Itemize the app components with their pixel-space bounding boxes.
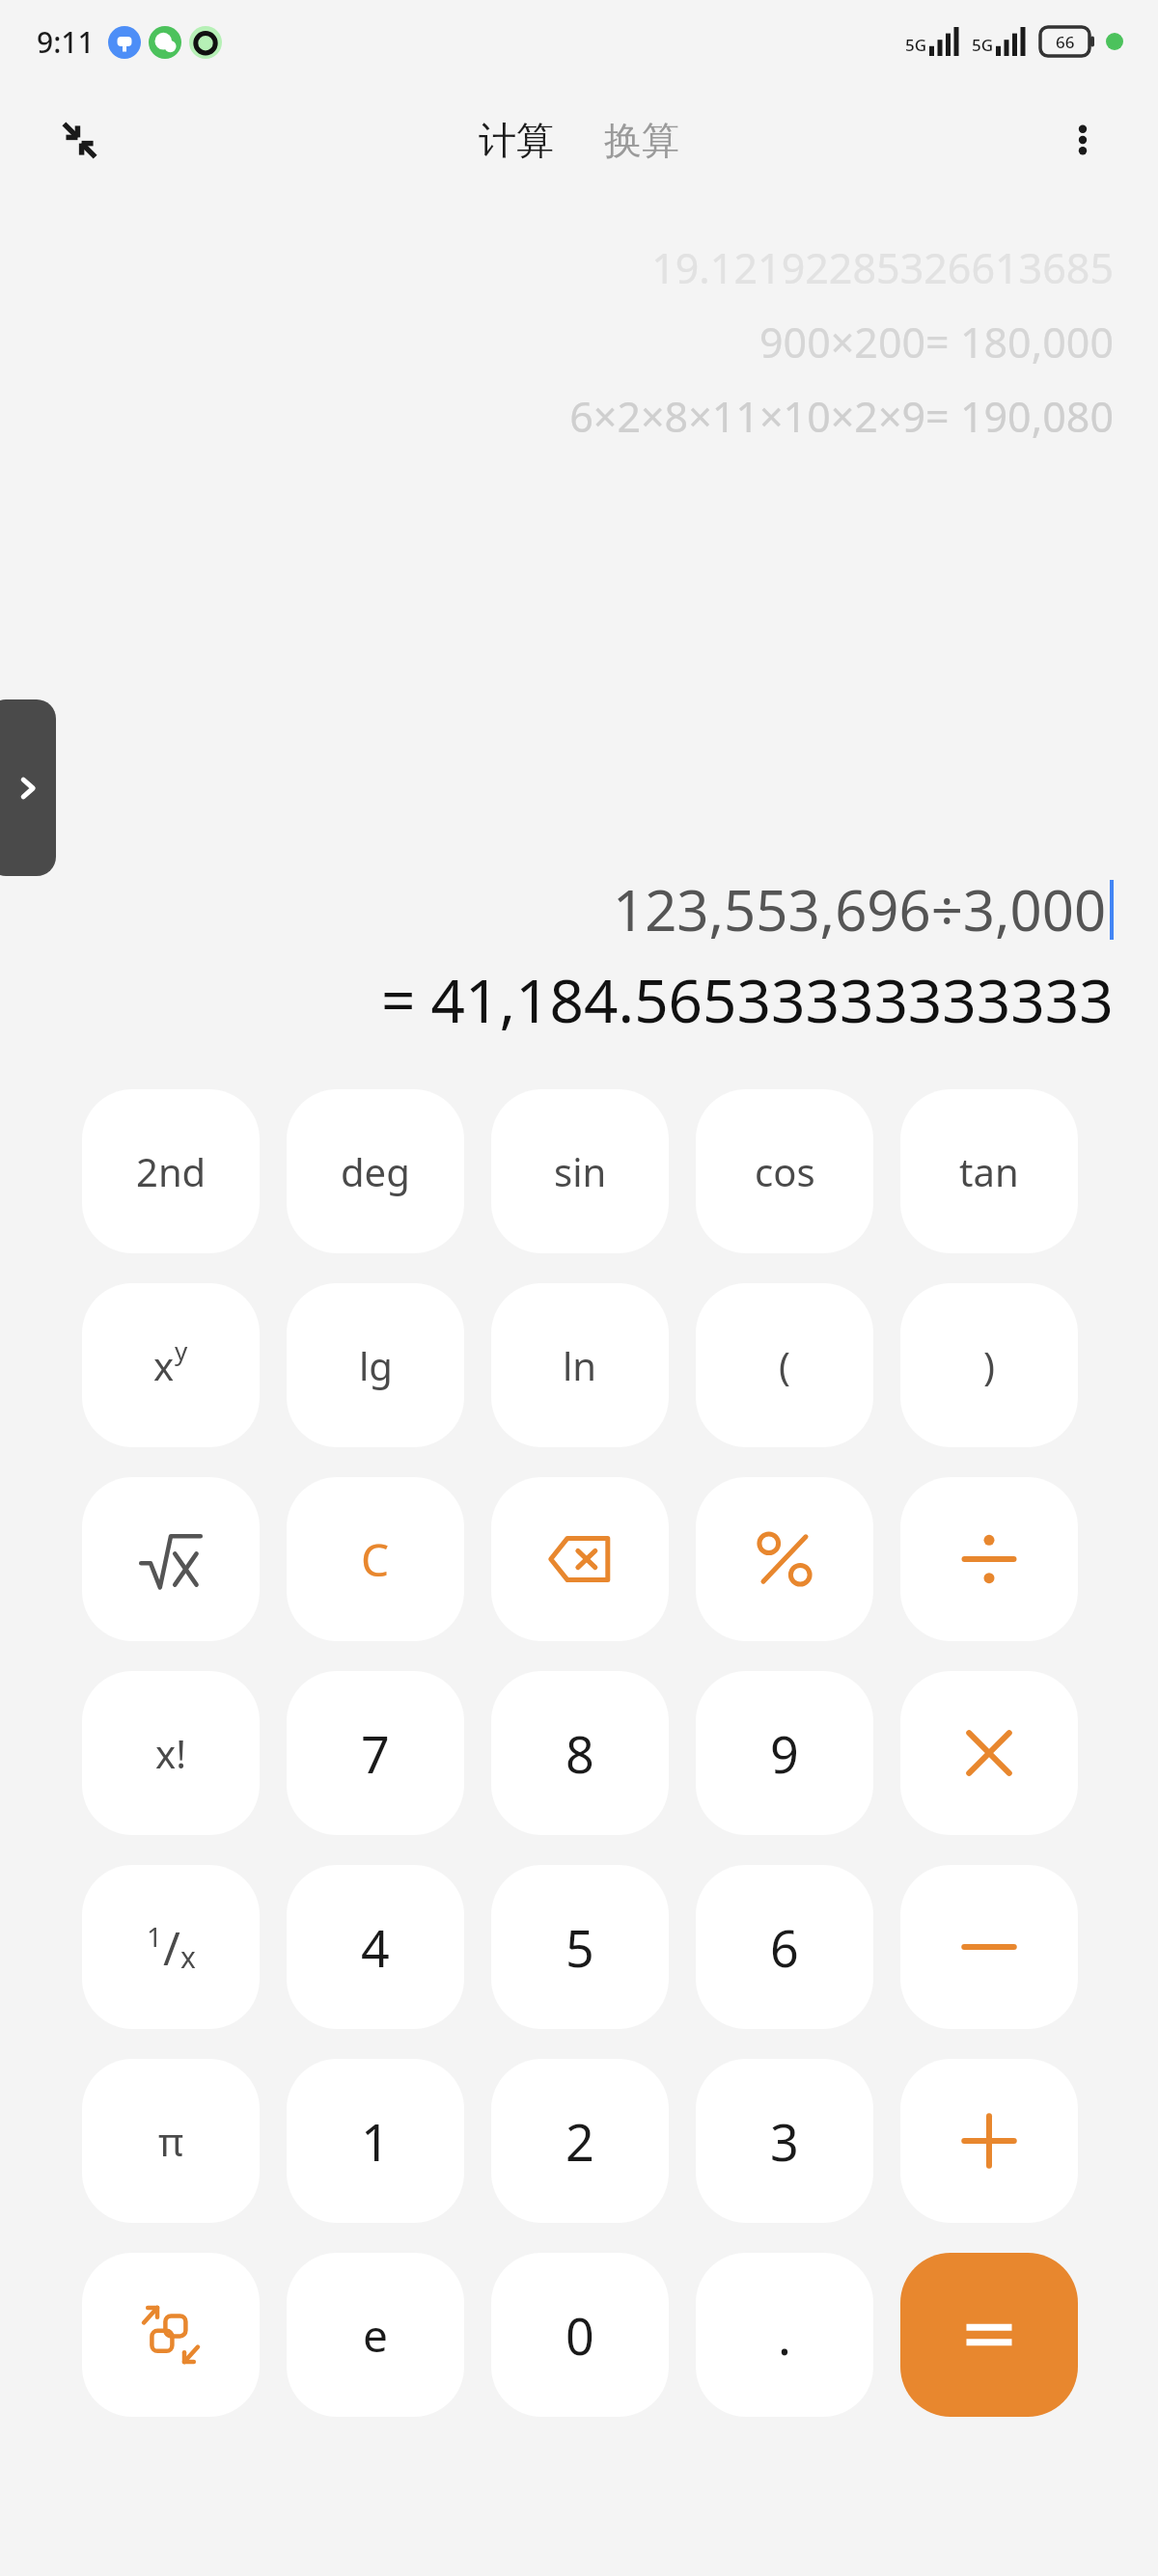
button[interactable]: π — [82, 2059, 260, 2223]
button[interactable]: C — [287, 1477, 464, 1641]
staticText: y — [175, 1333, 188, 1367]
button[interactable]: ) — [900, 1283, 1078, 1447]
staticText: tan — [959, 1145, 1019, 1197]
button[interactable]: lg — [287, 1283, 464, 1447]
button[interactable]: 1 — [287, 2059, 464, 2223]
button[interactable]: 2nd — [82, 1089, 260, 1253]
staticText: / — [163, 1916, 180, 1979]
staticText: lg — [359, 1339, 393, 1391]
button[interactable]: 5 — [491, 1865, 669, 2029]
staticText: 2 — [565, 2107, 594, 2176]
staticText: = 41,184.56533333333333 — [381, 959, 1114, 1040]
button[interactable]: More options — [1052, 109, 1114, 171]
button[interactable]: sin — [491, 1089, 669, 1253]
button[interactable]: 4 — [287, 1865, 464, 2029]
staticText: e — [363, 2305, 388, 2366]
staticText: π — [158, 2115, 184, 2167]
button[interactable]: 2 — [491, 2059, 669, 2223]
staticText: 900×200= 180,000 — [758, 314, 1114, 370]
button[interactable]: 6 — [696, 1865, 873, 2029]
button[interactable]: Equals — [900, 2253, 1078, 2417]
button[interactable]: Percent — [696, 1477, 873, 1641]
staticText: 换算 — [604, 117, 679, 164]
staticText: 2nd — [136, 1145, 207, 1197]
button[interactable]: Open history panel — [0, 699, 56, 876]
button[interactable]: Multiply — [900, 1671, 1078, 1835]
button[interactable]: 9 — [696, 1671, 873, 1835]
button[interactable]: Convert units — [82, 2253, 260, 2417]
staticText: ) — [983, 1339, 995, 1391]
button[interactable]: Backspace — [491, 1477, 669, 1641]
button[interactable]: Subtract — [900, 1865, 1078, 2029]
button[interactable]: cos — [696, 1089, 873, 1253]
staticText: x — [153, 1339, 175, 1391]
button[interactable]: x to the power y — [82, 1283, 260, 1447]
staticText: 19.12192285326613685 — [651, 239, 1114, 296]
staticText: 7 — [361, 1719, 390, 1788]
staticText: 123,553,696÷3,000 — [613, 871, 1107, 947]
staticText: . — [778, 2301, 791, 2370]
staticText: C — [361, 1529, 390, 1590]
staticText: 4 — [361, 1913, 390, 1982]
button[interactable]: 计算 — [471, 111, 562, 170]
staticText: 0 — [565, 2301, 594, 2370]
button[interactable]: Divide — [900, 1477, 1078, 1641]
button[interactable]: ln — [491, 1283, 669, 1447]
staticText: ln — [563, 1339, 597, 1391]
button[interactable]: 0 — [491, 2253, 669, 2417]
button[interactable]: tan — [900, 1089, 1078, 1253]
staticText: 5G — [905, 34, 927, 56]
button[interactable]: e — [287, 2253, 464, 2417]
staticText: 5G — [972, 34, 994, 56]
staticText: x! — [155, 1727, 186, 1779]
button[interactable]: Collapse — [46, 107, 112, 173]
staticText: deg — [341, 1145, 410, 1197]
staticText: 66 — [1056, 31, 1075, 53]
button[interactable]: deg — [287, 1089, 464, 1253]
staticText: 1 — [361, 2107, 390, 2176]
button[interactable]: 3 — [696, 2059, 873, 2223]
staticText: 3 — [770, 2107, 799, 2176]
button[interactable]: 换算 — [596, 111, 687, 170]
staticText: 5 — [565, 1913, 594, 1982]
staticText: sin — [554, 1145, 607, 1197]
staticText: 9:11 — [37, 22, 95, 62]
button[interactable]: Reciprocal — [82, 1865, 260, 2029]
staticText: 6 — [770, 1913, 799, 1982]
staticText: ( — [779, 1339, 790, 1391]
staticText: x — [180, 1937, 196, 1977]
button[interactable]: Square root — [82, 1477, 260, 1641]
staticText: 8 — [565, 1719, 594, 1788]
staticText: 6×2×8×11×10×2×9= 190,080 — [569, 388, 1114, 445]
button[interactable]: . — [696, 2253, 873, 2417]
staticText: 9 — [770, 1719, 799, 1788]
button[interactable]: 8 — [491, 1671, 669, 1835]
button[interactable]: 7 — [287, 1671, 464, 1835]
button[interactable]: Add — [900, 2059, 1078, 2223]
staticText: cos — [755, 1145, 815, 1197]
button[interactable]: x! — [82, 1671, 260, 1835]
staticText: 计算 — [479, 117, 554, 164]
button[interactable]: ( — [696, 1283, 873, 1447]
staticText: 1 — [147, 1918, 163, 1955]
